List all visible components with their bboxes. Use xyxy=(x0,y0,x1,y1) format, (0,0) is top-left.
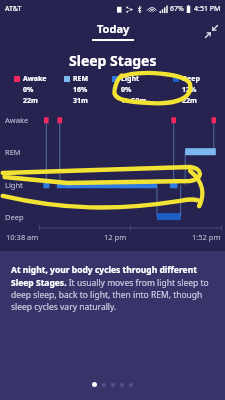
staticText: Deep xyxy=(5,212,24,222)
staticText: 16% xyxy=(73,85,88,95)
staticText: AT&T xyxy=(5,4,22,14)
staticText: 12% xyxy=(182,85,197,95)
button[interactable]: Today xyxy=(82,19,144,43)
staticText: Awake xyxy=(5,115,29,125)
button[interactable] xyxy=(92,382,97,387)
button[interactable]: REM xyxy=(64,74,112,105)
staticText: REM xyxy=(73,74,89,84)
staticText: 22m xyxy=(182,96,197,105)
staticText: 22m xyxy=(23,96,38,105)
staticText: Today xyxy=(97,21,130,36)
staticText: 31m xyxy=(73,96,88,105)
staticText: 67% xyxy=(170,4,184,14)
staticText: Deep xyxy=(182,74,200,84)
staticText: Light xyxy=(121,74,140,84)
button[interactable] xyxy=(120,383,124,387)
staticText: At night, your body cycles through diffe… xyxy=(11,264,214,312)
staticText: 1h 59m xyxy=(121,96,147,105)
staticText: REM xyxy=(5,147,21,157)
staticText: 1:52 pm xyxy=(192,232,221,242)
staticText: Awake xyxy=(23,74,47,84)
staticText: 10:38 am xyxy=(6,232,39,242)
staticText: Sleep Stages xyxy=(69,51,157,70)
staticText: Light xyxy=(5,180,23,190)
button[interactable]: Collapse xyxy=(200,20,222,42)
staticText: 4:51 PM xyxy=(194,4,221,14)
button[interactable]: Deep xyxy=(173,74,213,105)
button[interactable]: Light xyxy=(112,74,173,105)
staticText: 0% xyxy=(121,85,132,95)
button[interactable]: Awake xyxy=(14,74,64,105)
staticText: 0% xyxy=(23,85,34,95)
staticText: 12 pm xyxy=(104,232,127,242)
button[interactable] xyxy=(102,383,106,387)
button[interactable] xyxy=(129,383,133,387)
button[interactable] xyxy=(111,383,115,387)
